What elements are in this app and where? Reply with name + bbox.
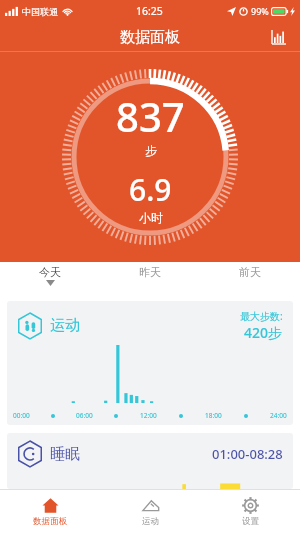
- staticText: 01:00-08:28: [212, 445, 283, 463]
- staticText: 837: [116, 89, 185, 143]
- staticText: 步: [145, 143, 157, 158]
- staticText: 今天: [39, 265, 61, 279]
- button[interactable]: 数据面板: [0, 490, 100, 533]
- staticText: 18:00: [205, 411, 222, 420]
- staticText: 99%: [251, 5, 269, 17]
- staticText: 昨天: [139, 265, 161, 279]
- staticText: 16:25: [136, 4, 163, 18]
- staticText: 24:00: [270, 411, 287, 420]
- staticText: 420步: [244, 323, 283, 342]
- staticText: 数据面板: [120, 28, 180, 47]
- staticText: 最大步数:: [240, 309, 283, 323]
- button[interactable]: Statistics: [266, 24, 292, 50]
- staticText: 中国联通: [22, 6, 58, 17]
- staticText: 12:00: [140, 411, 157, 420]
- button[interactable]: 昨天: [100, 262, 200, 294]
- button[interactable]: 设置: [200, 490, 300, 533]
- button[interactable]: 今天: [0, 262, 100, 294]
- staticText: 前天: [239, 265, 261, 279]
- button[interactable]: 前天: [200, 262, 300, 294]
- staticText: 运动: [142, 516, 159, 527]
- staticText: 睡眠: [50, 445, 80, 464]
- staticText: 设置: [242, 516, 259, 527]
- staticText: 数据面板: [33, 516, 67, 527]
- button[interactable]: 运动: [100, 490, 200, 533]
- staticText: 06:00: [76, 411, 93, 420]
- button[interactable]: 运动: [7, 301, 293, 425]
- staticText: 6.9: [129, 169, 172, 210]
- staticText: 运动: [50, 316, 80, 335]
- staticText: 00:00: [13, 411, 30, 420]
- button[interactable]: 睡眠: [7, 433, 293, 489]
- staticText: 小时: [139, 210, 163, 225]
